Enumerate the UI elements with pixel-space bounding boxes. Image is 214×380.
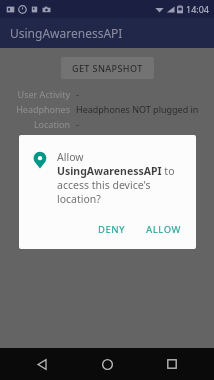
staticText: UsingAwarenessAPI bbox=[10, 25, 123, 41]
staticText: GET SNAPSHOT bbox=[72, 62, 143, 74]
button[interactable]: Home bbox=[93, 350, 121, 378]
staticText: - bbox=[76, 118, 79, 130]
staticText: Location bbox=[33, 118, 70, 130]
button[interactable]: Back bbox=[28, 350, 56, 378]
staticText: Allow UsingAwarenessAPI to access this d… bbox=[57, 150, 184, 206]
staticText: Headphones NOT plugged in bbox=[76, 103, 199, 115]
staticText: - bbox=[76, 88, 79, 100]
button[interactable]: DENY bbox=[91, 218, 133, 241]
staticText: DENY bbox=[98, 223, 126, 236]
button[interactable]: GET SNAPSHOT bbox=[61, 57, 154, 79]
staticText: User Activity bbox=[17, 88, 70, 100]
button[interactable]: Recent apps bbox=[158, 350, 186, 378]
staticText: 14:04 bbox=[186, 3, 210, 15]
button[interactable]: ALLOW bbox=[139, 218, 188, 241]
staticText: ALLOW bbox=[146, 223, 181, 236]
staticText: Headphones bbox=[16, 103, 70, 115]
